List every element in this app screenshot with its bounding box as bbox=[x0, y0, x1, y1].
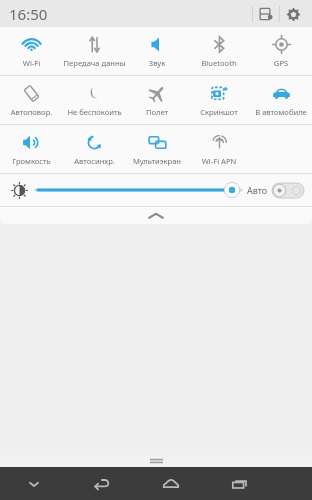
button[interactable]: Звук bbox=[126, 27, 188, 75]
staticText: Bluetooth bbox=[188, 58, 250, 68]
button[interactable]: Home bbox=[136, 467, 205, 500]
button[interactable]: Back bbox=[68, 467, 136, 500]
staticText: Громкость bbox=[0, 156, 63, 166]
button[interactable]: Скриншот bbox=[188, 76, 250, 124]
button[interactable]: Полет bbox=[126, 76, 188, 124]
button[interactable]: Громкость bbox=[0, 125, 63, 173]
button[interactable]: Автосинхр. bbox=[63, 125, 126, 173]
staticText: В автомобиле bbox=[250, 107, 312, 117]
button[interactable]: Автоповор. bbox=[0, 76, 63, 124]
button[interactable]: Передача данны bbox=[63, 27, 126, 75]
button[interactable]: Не беспокоить bbox=[63, 76, 126, 124]
button[interactable]: Brightness slider bbox=[36, 179, 241, 201]
button[interactable]: Wi-Fi bbox=[0, 27, 63, 75]
staticText: Скриншот bbox=[188, 107, 250, 117]
button[interactable]: Edit tiles bbox=[253, 1, 279, 27]
button[interactable]: Recents bbox=[205, 467, 274, 500]
staticText: Передача данны bbox=[63, 58, 126, 68]
button[interactable]: В автомобиле bbox=[250, 76, 312, 124]
staticText: Авто bbox=[247, 184, 268, 196]
staticText: Автоповор. bbox=[0, 107, 63, 117]
staticText: Полет bbox=[126, 107, 188, 117]
staticText: Автосинхр. bbox=[63, 156, 126, 166]
staticText: 16:50 bbox=[9, 4, 48, 24]
button[interactable]: Auto brightness toggle bbox=[272, 183, 304, 198]
button[interactable]: Wi-Fi APN bbox=[188, 125, 250, 173]
staticText: Не беспокоить bbox=[63, 107, 126, 117]
button[interactable]: GPS bbox=[250, 27, 312, 75]
staticText: Wi-Fi bbox=[0, 58, 63, 68]
button[interactable]: Settings bbox=[280, 1, 306, 27]
button[interactable]: Collapse bbox=[0, 207, 312, 224]
button[interactable]: Мультиэкран bbox=[126, 125, 188, 173]
button[interactable]: Bluetooth bbox=[188, 27, 250, 75]
button[interactable]: Brightness bbox=[8, 179, 30, 201]
staticText: GPS bbox=[250, 58, 312, 68]
button[interactable]: Hide bbox=[0, 467, 68, 500]
staticText: Мультиэкран bbox=[126, 156, 188, 166]
staticText: Звук bbox=[126, 58, 188, 68]
staticText: Wi-Fi APN bbox=[188, 156, 250, 166]
